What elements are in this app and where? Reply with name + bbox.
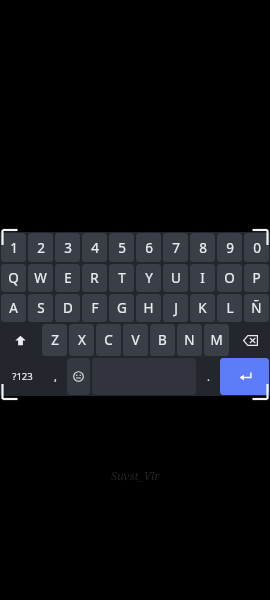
- button[interactable]: D: [55, 294, 80, 322]
- staticText: Suvst_Vlr: [111, 468, 160, 483]
- button[interactable]: Ñ: [244, 294, 269, 322]
- staticText: 2: [37, 239, 45, 257]
- button[interactable]: Emoji: [67, 358, 90, 395]
- staticText: 5: [118, 239, 126, 257]
- staticText: S: [37, 299, 45, 317]
- staticText: Ñ: [251, 299, 262, 317]
- staticText: I: [200, 269, 205, 287]
- staticText: H: [143, 299, 154, 317]
- button[interactable]: Y: [136, 264, 161, 292]
- button[interactable]: S: [28, 294, 53, 322]
- button[interactable]: ,: [45, 358, 65, 395]
- staticText: Z: [51, 331, 59, 349]
- staticText: 3: [64, 239, 72, 257]
- staticText: G: [117, 299, 127, 317]
- staticText: 6: [145, 239, 153, 257]
- staticText: B: [158, 331, 167, 349]
- staticText: ?123: [12, 370, 33, 383]
- staticText: 4: [91, 239, 99, 257]
- staticText: N: [184, 331, 195, 349]
- button[interactable]: E: [55, 264, 80, 292]
- button[interactable]: T: [109, 264, 134, 292]
- button[interactable]: Q: [1, 264, 26, 292]
- staticText: J: [174, 299, 178, 317]
- staticText: O: [224, 269, 235, 287]
- button[interactable]: Enter: [220, 358, 269, 395]
- staticText: Q: [8, 269, 19, 287]
- staticText: F: [91, 299, 99, 317]
- button[interactable]: 2: [28, 233, 53, 262]
- button[interactable]: L: [217, 294, 242, 322]
- button[interactable]: 1: [1, 233, 26, 262]
- button[interactable]: M: [204, 324, 229, 356]
- staticText: P: [252, 269, 261, 287]
- button[interactable]: B: [150, 324, 175, 356]
- button[interactable]: 9: [217, 233, 242, 262]
- staticText: E: [64, 269, 72, 287]
- button[interactable]: Z: [42, 324, 67, 356]
- button[interactable]: 3: [55, 233, 80, 262]
- staticText: .: [207, 369, 210, 384]
- button[interactable]: H: [136, 294, 161, 322]
- button[interactable]: Shift: [1, 324, 40, 356]
- staticText: R: [90, 269, 99, 287]
- staticText: 7: [172, 239, 180, 257]
- staticText: ,: [54, 369, 57, 384]
- staticText: V: [131, 331, 140, 349]
- button[interactable]: 5: [109, 233, 134, 262]
- staticText: K: [198, 299, 207, 317]
- staticText: T: [118, 269, 126, 287]
- button[interactable]: O: [217, 264, 242, 292]
- staticText: D: [63, 299, 73, 317]
- button[interactable]: C: [96, 324, 121, 356]
- staticText: L: [226, 299, 234, 317]
- staticText: 0: [253, 239, 261, 257]
- staticText: 8: [199, 239, 207, 257]
- button[interactable]: ?123: [1, 358, 43, 395]
- button[interactable]: K: [190, 294, 215, 322]
- button[interactable]: Backspace: [231, 324, 269, 356]
- button[interactable]: 8: [190, 233, 215, 262]
- button[interactable]: V: [123, 324, 148, 356]
- button[interactable]: A: [1, 294, 26, 322]
- button[interactable]: G: [109, 294, 134, 322]
- staticText: A: [9, 299, 18, 317]
- button[interactable]: X: [69, 324, 94, 356]
- button[interactable]: W: [28, 264, 53, 292]
- button[interactable]: R: [82, 264, 107, 292]
- staticText: M: [210, 331, 223, 349]
- staticText: Y: [145, 269, 153, 287]
- button[interactable]: P: [244, 264, 269, 292]
- staticText: X: [78, 331, 86, 349]
- button[interactable]: N: [177, 324, 202, 356]
- staticText: W: [34, 269, 47, 287]
- button[interactable]: 0: [244, 233, 269, 262]
- staticText: 9: [226, 239, 234, 257]
- staticText: C: [104, 331, 113, 349]
- button[interactable]: 6: [136, 233, 161, 262]
- staticText: 1: [10, 239, 18, 257]
- button[interactable]: 7: [163, 233, 188, 262]
- button[interactable]: .: [198, 358, 218, 395]
- button[interactable]: 4: [82, 233, 107, 262]
- staticText: U: [171, 269, 181, 287]
- button[interactable]: F: [82, 294, 107, 322]
- button[interactable]: I: [190, 264, 215, 292]
- button[interactable]: U: [163, 264, 188, 292]
- button[interactable]: J: [163, 294, 188, 322]
